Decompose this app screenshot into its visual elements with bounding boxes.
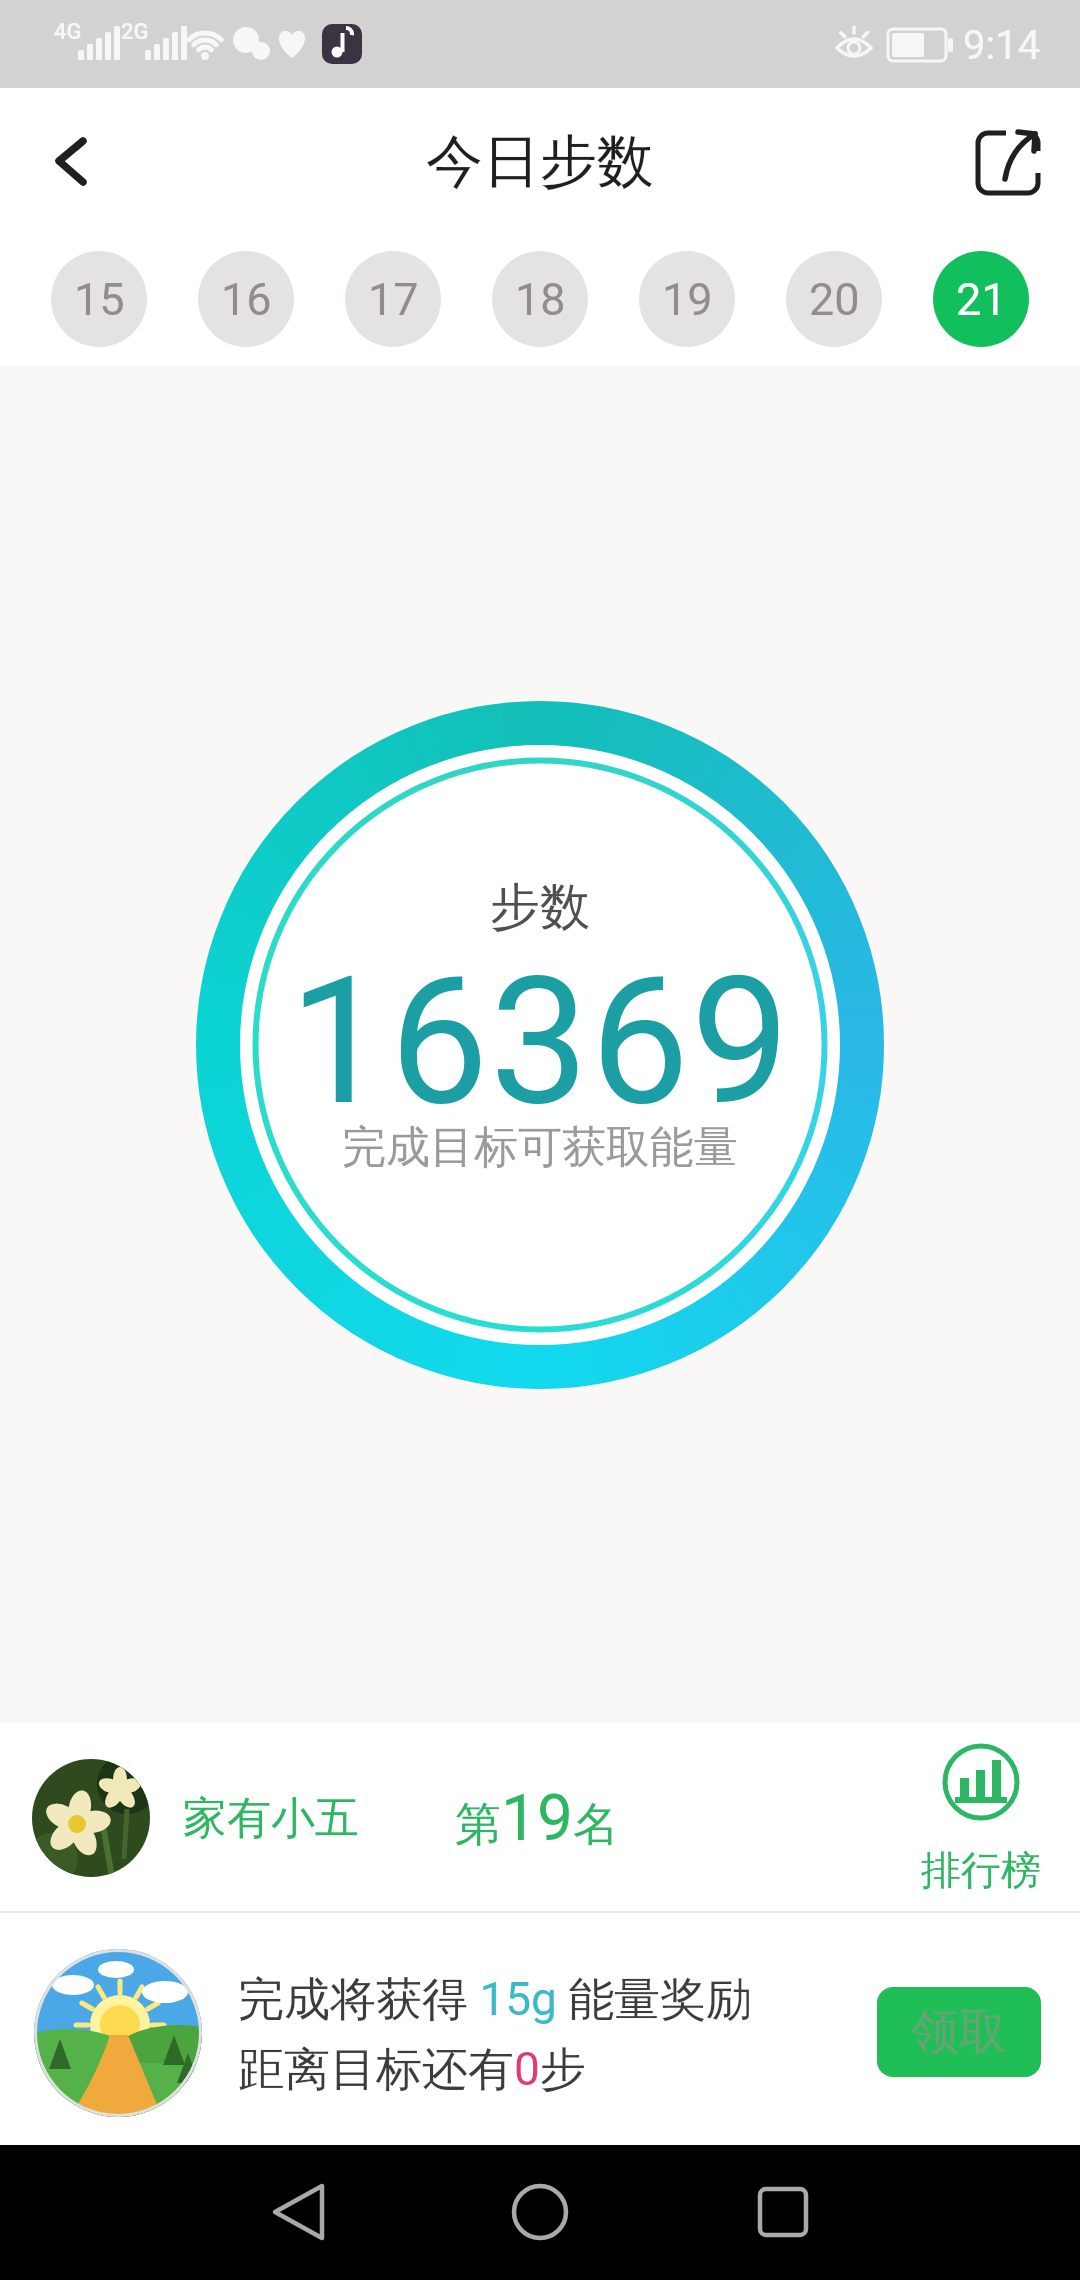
staticText: 18 (515, 273, 566, 326)
button[interactable]: 16 (198, 251, 294, 347)
staticText: 9:14 (963, 22, 1041, 69)
staticText: 排行榜 (921, 1845, 1041, 1895)
staticText: 17 (368, 273, 419, 326)
button[interactable]: 排行榜 (911, 1735, 1051, 1905)
staticText: 第19名 (455, 1781, 619, 1856)
button[interactable] (958, 113, 1058, 213)
button[interactable] (480, 2152, 600, 2272)
staticText: 距离目标还有0步 (238, 2041, 586, 2099)
staticText: 完成将获得 15g 能量奖励 (238, 1971, 753, 2029)
button[interactable] (723, 2152, 843, 2272)
staticText: 领取 (911, 2002, 1007, 2062)
button[interactable]: 领取 (877, 1987, 1041, 2077)
staticText: 15 (74, 273, 125, 326)
staticText: 2G (121, 19, 149, 45)
staticText: 步数 (490, 876, 590, 939)
staticText: 19 (662, 273, 713, 326)
staticText: 家有小五 (183, 1791, 359, 1846)
staticText: 今日步数 (426, 126, 654, 198)
button[interactable]: 18 (492, 251, 588, 347)
staticText: 16 (221, 273, 272, 326)
button[interactable]: 19 (639, 251, 735, 347)
button[interactable]: 15 (51, 251, 147, 347)
staticText: 完成目标可获取能量 (342, 1120, 738, 1175)
button[interactable] (238, 2152, 358, 2272)
button[interactable]: 21 (933, 251, 1029, 347)
button[interactable]: 17 (345, 251, 441, 347)
staticText: 20 (809, 273, 860, 326)
button[interactable]: 20 (786, 251, 882, 347)
button[interactable] (30, 108, 130, 208)
staticText: 21 (956, 273, 1007, 326)
staticText: 16369 (289, 939, 792, 1145)
staticText: 4G (54, 19, 82, 45)
